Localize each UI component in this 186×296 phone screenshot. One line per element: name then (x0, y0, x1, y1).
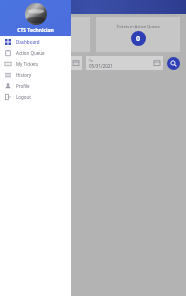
staticText: My Tickets (16, 61, 39, 67)
button[interactable]: Tickets in Queue (6, 17, 90, 52)
button[interactable]: Tickets in Active Queue (96, 17, 180, 52)
staticText: 0 (136, 34, 141, 44)
staticText: From (9, 58, 18, 63)
button[interactable]: History (0, 69, 71, 80)
staticText: Dashboard (16, 39, 40, 45)
button[interactable]: Action Queue (0, 47, 71, 58)
staticText: Profile (16, 83, 30, 89)
button[interactable]: Search (167, 57, 180, 70)
staticText: Action Queue (16, 50, 45, 56)
button[interactable]: To (86, 56, 163, 70)
button[interactable]: Logout (0, 91, 71, 102)
staticText: 0 (46, 34, 51, 44)
button[interactable]: Profile (0, 80, 71, 91)
staticText: CTS Technician (17, 27, 54, 34)
staticText: 05/01/2021 (9, 63, 33, 69)
staticText: History (16, 72, 32, 78)
staticText: Tickets in Active Queue (116, 24, 160, 29)
button[interactable]: Dashboard (0, 36, 71, 47)
staticText: To (89, 58, 93, 63)
button[interactable]: From (6, 56, 82, 70)
button[interactable]: My Tickets (0, 58, 71, 69)
staticText: Tickets in Queue (32, 24, 64, 29)
staticText: 05/31/2021 (89, 63, 113, 69)
button[interactable] (25, 3, 47, 25)
staticText: Logout (16, 94, 31, 100)
